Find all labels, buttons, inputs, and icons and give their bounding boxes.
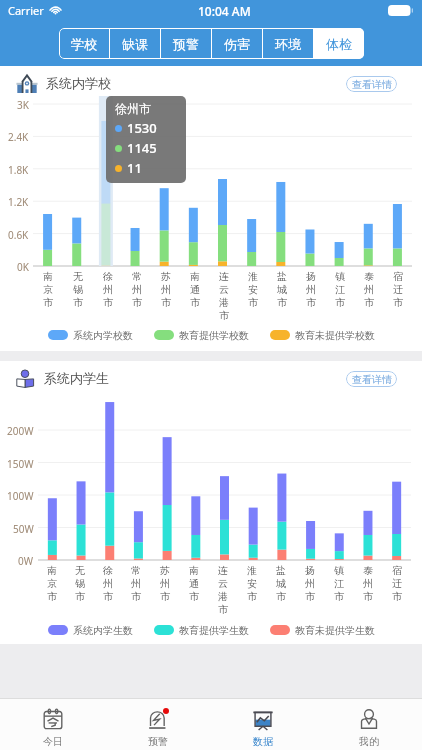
- staticText: 市: [43, 296, 53, 309]
- staticText: 州: [306, 283, 316, 296]
- staticText: 镇: [335, 270, 345, 283]
- staticText: 云: [219, 283, 229, 296]
- staticText: 1.2K: [8, 195, 29, 209]
- staticText: 市: [364, 296, 374, 309]
- staticText: 宿: [392, 564, 402, 577]
- staticText: 环境: [275, 36, 301, 52]
- staticText: 今日: [43, 735, 63, 748]
- staticText: 港: [218, 590, 228, 603]
- staticText: 锡: [73, 283, 83, 296]
- staticText: 150W: [7, 457, 34, 471]
- staticText: 城: [276, 577, 286, 590]
- staticText: 镇: [334, 564, 344, 577]
- staticText: 州: [305, 577, 315, 590]
- staticText: 盐: [276, 564, 286, 577]
- staticText: 市: [276, 590, 286, 603]
- staticText: 连: [219, 270, 229, 283]
- button[interactable]: Alerts: [105, 699, 210, 750]
- staticText: 州: [364, 283, 374, 296]
- staticText: 市: [190, 296, 200, 309]
- staticText: 系统内学校数: [73, 329, 133, 342]
- staticText: 安: [248, 283, 258, 296]
- staticText: 市: [218, 603, 228, 616]
- staticText: 南: [190, 270, 200, 283]
- staticText: 系统内学生: [44, 370, 109, 386]
- staticText: 州: [103, 577, 113, 590]
- staticText: 教育未提供学生数: [295, 624, 375, 637]
- staticText: 市: [248, 296, 258, 309]
- button[interactable]: Data: [210, 699, 316, 750]
- staticText: 教育提供学生数: [179, 624, 249, 637]
- staticText: 市: [47, 590, 57, 603]
- staticText: 泰: [363, 564, 373, 577]
- staticText: 市: [306, 296, 316, 309]
- button[interactable]: 查看详情: [346, 76, 397, 92]
- button[interactable]: 伤害: [212, 28, 262, 59]
- staticText: 锡: [75, 577, 85, 590]
- staticText: 11: [127, 159, 142, 177]
- staticText: 通: [189, 577, 199, 590]
- staticText: 常: [132, 270, 142, 283]
- staticText: 系统内学校: [46, 75, 111, 91]
- staticText: 常: [131, 564, 141, 577]
- staticText: 京: [47, 577, 57, 590]
- staticText: 市: [363, 590, 373, 603]
- staticText: 市: [392, 590, 402, 603]
- staticText: 10:04 AM: [198, 3, 251, 19]
- button[interactable]: 环境: [263, 28, 313, 59]
- button[interactable]: 学校: [59, 28, 109, 59]
- staticText: 州: [132, 283, 142, 296]
- staticText: 盐: [277, 270, 287, 283]
- staticText: 泰: [364, 270, 374, 283]
- button[interactable]: 预警: [161, 28, 211, 59]
- staticText: 连: [218, 564, 228, 577]
- staticText: 1145: [127, 139, 157, 157]
- button[interactable]: 缺课: [110, 28, 160, 59]
- staticText: 0K: [17, 260, 29, 274]
- staticText: 江: [334, 577, 344, 590]
- staticText: 港: [219, 296, 229, 309]
- staticText: 预警: [148, 735, 168, 748]
- staticText: 市: [161, 296, 171, 309]
- button[interactable]: 查看详情: [346, 371, 397, 387]
- staticText: 教育未提供学校数: [295, 329, 375, 342]
- staticText: 市: [132, 296, 142, 309]
- staticText: 扬: [306, 270, 316, 283]
- staticText: 迁: [393, 283, 403, 296]
- staticText: 市: [103, 296, 113, 309]
- staticText: 州: [103, 283, 113, 296]
- staticText: 江: [335, 283, 345, 296]
- staticText: 州: [160, 577, 170, 590]
- staticText: 0W: [18, 554, 34, 568]
- staticText: 南: [189, 564, 199, 577]
- staticText: 200W: [7, 424, 34, 438]
- staticText: 苏: [160, 564, 170, 577]
- staticText: 教育提供学校数: [179, 329, 249, 342]
- staticText: 无: [75, 564, 85, 577]
- staticText: 市: [305, 590, 315, 603]
- staticText: 苏: [161, 270, 171, 283]
- staticText: 3K: [17, 98, 29, 112]
- staticText: 市: [277, 296, 287, 309]
- staticText: 0.6K: [8, 228, 29, 242]
- staticText: 徐州市: [115, 101, 151, 116]
- staticText: 伤害: [224, 36, 250, 52]
- staticText: 宿: [393, 270, 403, 283]
- staticText: 学校: [71, 36, 97, 52]
- staticText: 1530: [127, 119, 157, 137]
- staticText: 徐: [103, 270, 113, 283]
- staticText: 市: [75, 590, 85, 603]
- staticText: 市: [219, 309, 229, 322]
- staticText: 市: [334, 590, 344, 603]
- button[interactable]: Profile: [316, 699, 422, 750]
- staticText: 云: [218, 577, 228, 590]
- staticText: 市: [335, 296, 345, 309]
- button[interactable]: 体检: [314, 28, 364, 59]
- staticText: 查看详情: [352, 373, 392, 386]
- button[interactable]: Today: [0, 699, 105, 750]
- staticText: 50W: [13, 522, 34, 536]
- staticText: 迁: [392, 577, 402, 590]
- staticText: 查看详情: [352, 78, 392, 91]
- staticText: 我的: [359, 735, 379, 748]
- staticText: 数据: [253, 735, 273, 748]
